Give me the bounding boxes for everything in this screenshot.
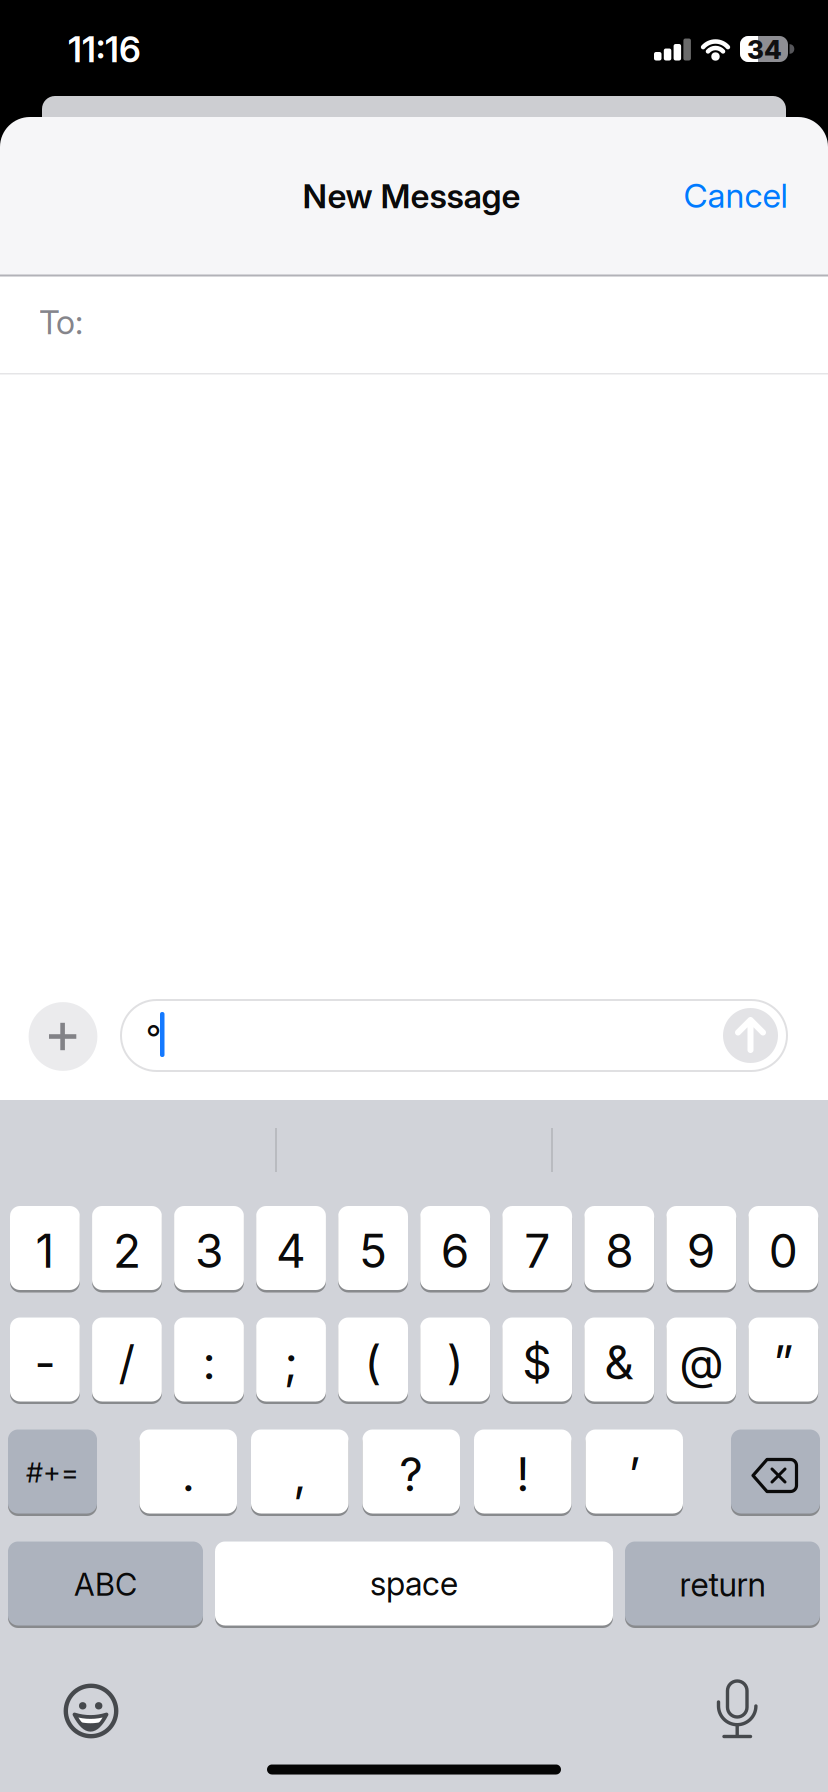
- staticText: 6: [441, 1223, 470, 1279]
- staticText: 2: [113, 1223, 141, 1279]
- staticText: ;: [284, 1335, 298, 1390]
- staticText: -: [34, 1335, 55, 1390]
- staticText: $: [522, 1335, 552, 1390]
- staticText: 1: [35, 1223, 54, 1279]
- staticText: 3: [195, 1223, 223, 1279]
- staticText: ABC: [74, 1566, 137, 1603]
- staticText: .: [182, 1447, 195, 1502]
- staticText: Cancel: [683, 175, 787, 216]
- staticText: 0: [769, 1223, 798, 1279]
- staticText: 8: [605, 1223, 633, 1279]
- staticText: #+=: [26, 1456, 79, 1489]
- staticText: ): [447, 1335, 464, 1390]
- staticText: /: [118, 1335, 135, 1390]
- staticText: 34: [747, 34, 782, 65]
- staticText: 7: [524, 1223, 550, 1279]
- staticText: 4: [276, 1223, 306, 1279]
- staticText: !: [516, 1447, 529, 1502]
- staticText: ’: [628, 1447, 640, 1502]
- staticText: ?: [399, 1447, 423, 1502]
- staticText: 11:16: [68, 28, 141, 71]
- staticText: 5: [359, 1223, 387, 1279]
- staticText: space: [370, 1564, 458, 1603]
- staticText: 9: [687, 1223, 716, 1279]
- staticText: ”: [773, 1335, 793, 1390]
- staticText: (: [365, 1335, 382, 1390]
- staticText: ,: [293, 1447, 306, 1502]
- staticText: &: [604, 1335, 634, 1390]
- staticText: To:: [39, 302, 83, 342]
- staticText: °: [146, 1017, 161, 1059]
- staticText: New Message: [302, 176, 520, 216]
- staticText: :: [202, 1335, 215, 1390]
- staticText: @: [679, 1335, 723, 1390]
- staticText: return: [679, 1565, 765, 1604]
